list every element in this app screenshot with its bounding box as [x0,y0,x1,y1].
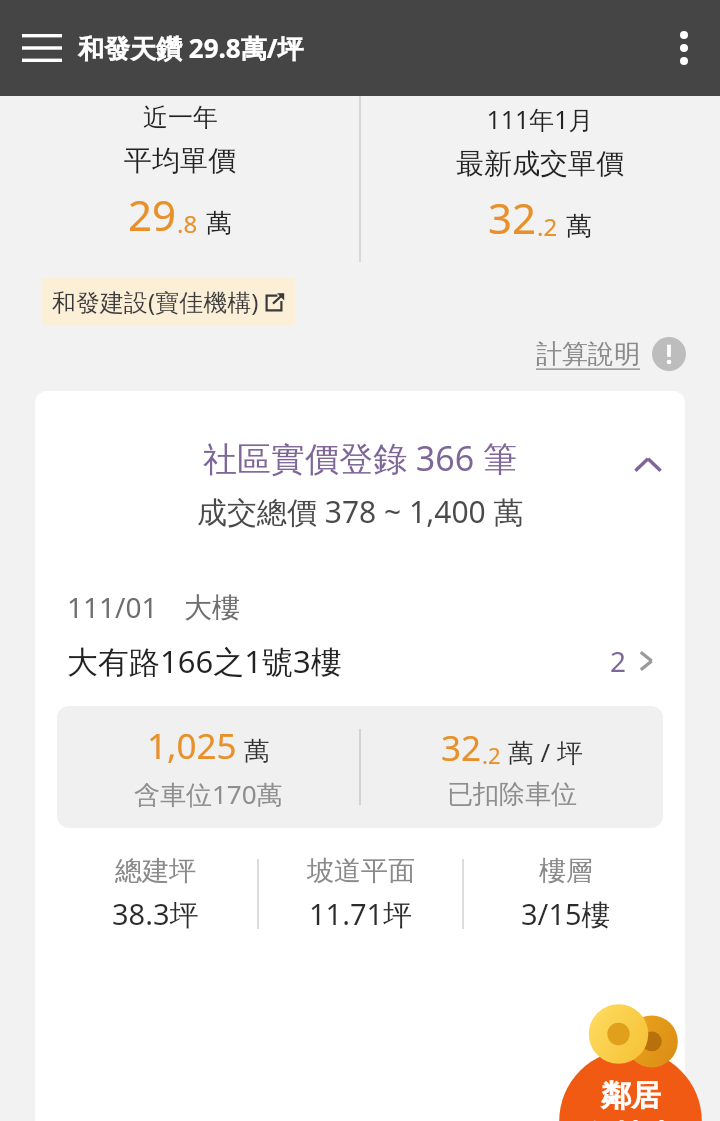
staticText: 鄰居 [601,1077,661,1115]
staticText: 和發天鑽 29.8萬/坪 [78,30,304,66]
staticText: 近一年 [143,102,218,133]
staticText: 已扣除車位 [447,778,577,811]
staticText: 平均單價 [124,143,236,178]
staticText: 32 [488,189,537,246]
staticText: 3/15樓 [521,894,611,934]
staticText: 29 [128,186,177,243]
staticText: .8 [177,207,198,240]
staticText: 萬 [566,210,592,243]
other: Collapse [633,451,663,481]
staticText: 38.3坪 [112,894,199,934]
button[interactable]: More options [656,20,712,76]
staticText: 大有路166之1號3樓 [67,640,342,682]
staticText: 坡道平面 [307,854,415,888]
staticText: 1,025 [147,722,237,770]
staticText: .2 [482,740,501,770]
staticText: 成交總價 378 ~ 1,400 萬 [197,491,524,532]
staticText: 計算說明 [536,338,640,371]
staticText: 11.71坪 [309,894,413,934]
button[interactable]: 和發建設(寶佳機構) [42,278,295,325]
staticText: .2 [537,210,558,243]
staticText: 大樓 [184,590,240,625]
staticText: 行情表 [586,1117,676,1121]
staticText: 含車位170萬 [134,776,283,812]
staticText: 社區實價登錄 366 筆 [203,435,518,481]
staticText: 樓層 [539,854,593,888]
staticText: 和發建設(寶佳機構) [52,285,259,318]
staticText: 111年1月 [486,102,594,136]
button[interactable]: Menu [12,18,72,78]
button[interactable]: 社區實價登錄 366 筆 [35,435,685,532]
staticText: 萬 [237,732,270,768]
staticText: 2 [610,642,627,680]
button[interactable]: 計算說明 [530,331,692,377]
button[interactable]: 111/01 [35,588,685,682]
staticText: 萬 [206,207,232,240]
staticText: 最新成交單價 [456,146,624,181]
button[interactable]: 鄰居行情表 [553,1025,708,1121]
staticText: 32 [441,724,482,772]
staticText: 111/01 [67,588,158,626]
staticText: 萬 / 坪 [501,734,583,770]
staticText: 總建坪 [115,854,196,888]
